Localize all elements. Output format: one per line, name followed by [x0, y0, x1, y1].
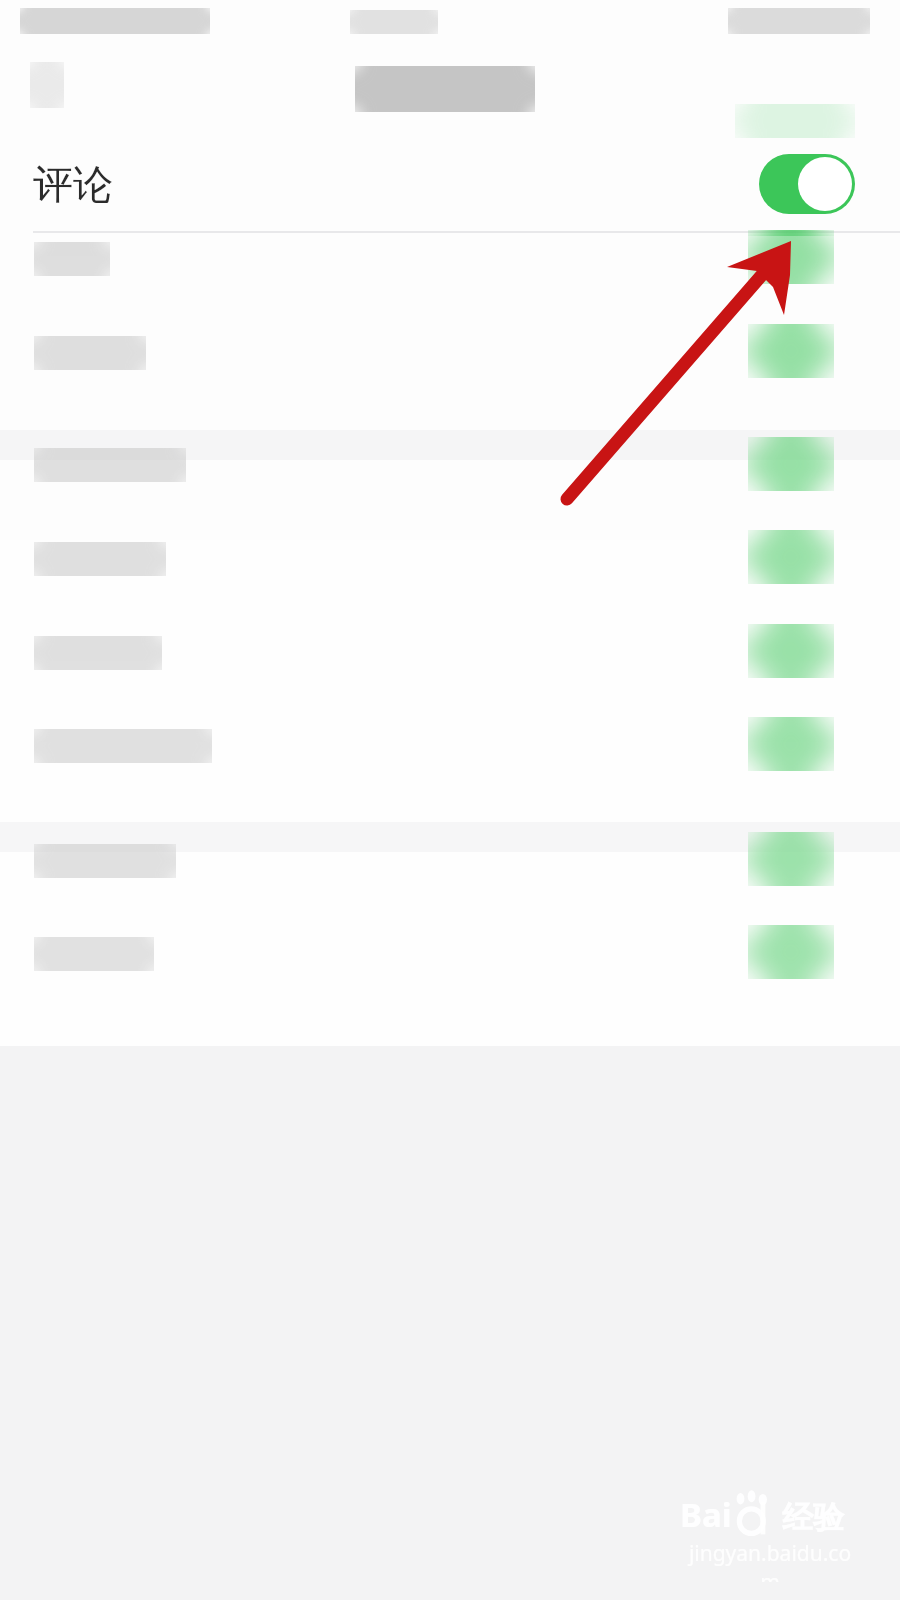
staticText: jingyan.baidu.com	[680, 1539, 860, 1582]
button[interactable]: 评论 开关 已开启	[759, 154, 855, 214]
staticText: 评论	[33, 159, 113, 209]
staticText: 经验	[782, 1498, 844, 1537]
staticText: Bai	[680, 1492, 732, 1537]
button[interactable]: 评论	[0, 136, 900, 232]
